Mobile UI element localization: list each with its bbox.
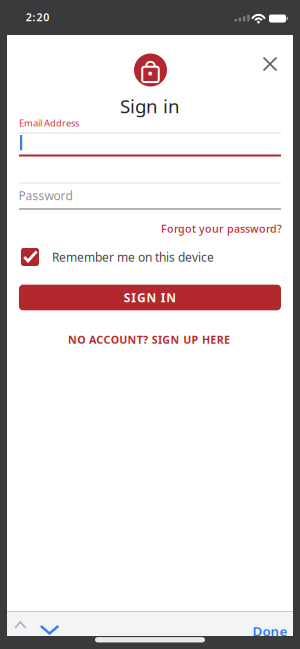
staticText: Forgot your password? — [161, 221, 282, 236]
staticText: Sign in — [120, 94, 180, 118]
staticText: Email Address — [19, 117, 79, 129]
staticText: SIGN IN — [124, 289, 176, 305]
button[interactable]: SIGN IN — [19, 285, 281, 310]
staticText: NO ACCOUNT? SIGN UP HERE — [68, 332, 230, 347]
button[interactable]: Done — [207, 622, 287, 640]
staticText: Password — [18, 187, 72, 203]
staticText: Remember me on this device — [52, 249, 214, 265]
button[interactable]: Forgot your password? — [19, 221, 282, 236]
button[interactable]: NO ACCOUNT? SIGN UP HERE — [68, 332, 230, 347]
button[interactable]: Remember me on this device — [21, 248, 283, 266]
button[interactable] — [257, 51, 283, 77]
button[interactable] — [13, 620, 28, 630]
staticText: Done — [252, 622, 287, 640]
staticText: 2:20 — [26, 10, 49, 24]
button[interactable] — [39, 624, 60, 635]
